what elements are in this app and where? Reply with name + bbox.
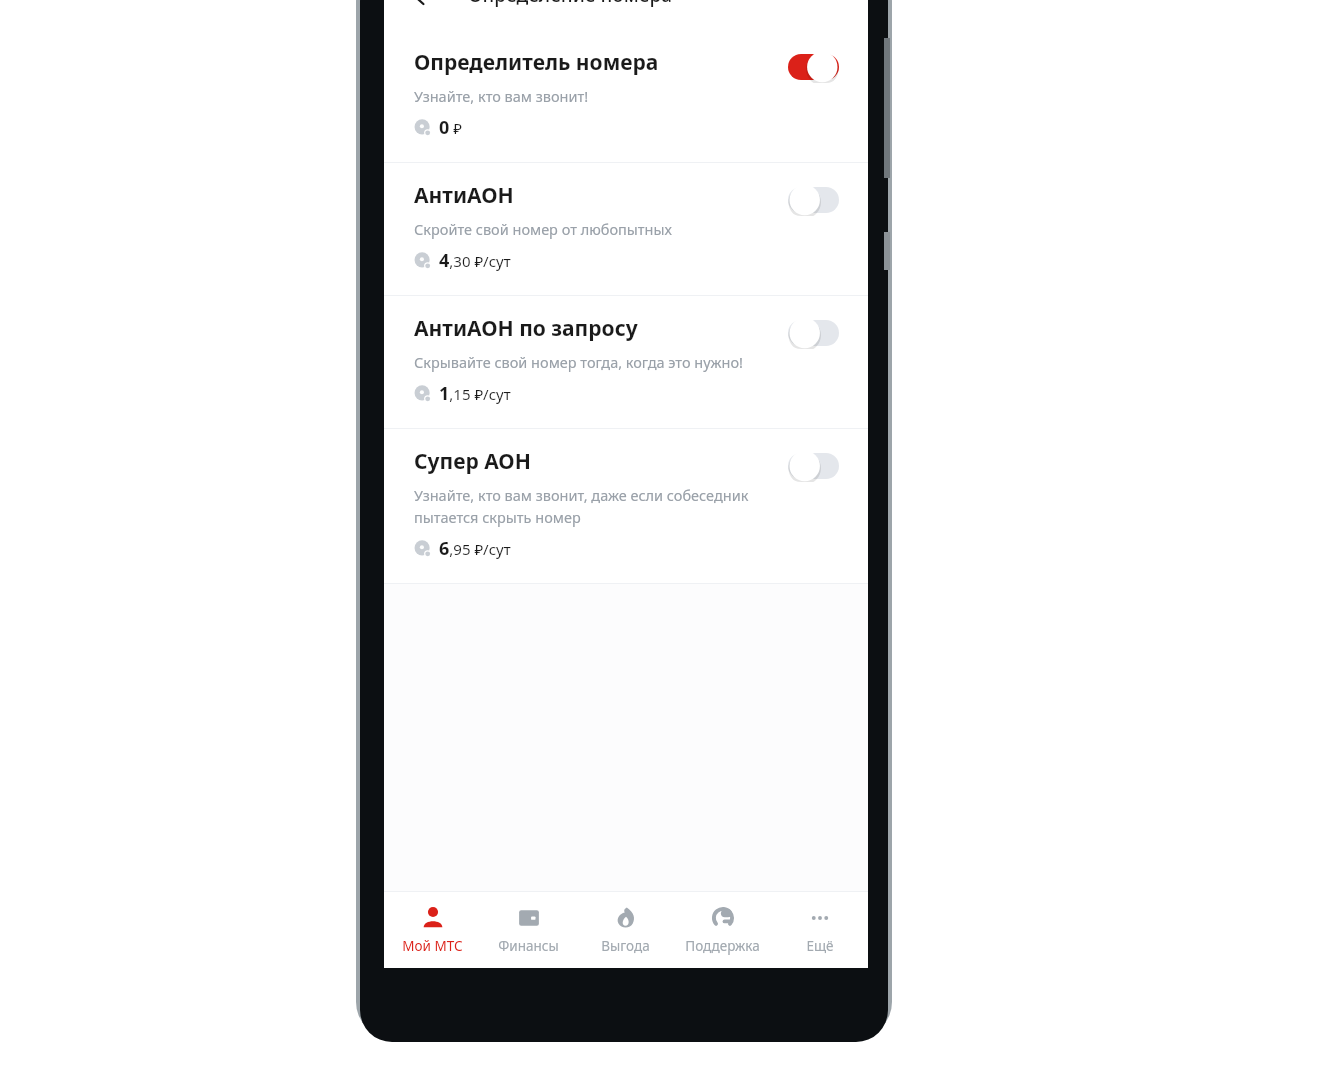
staticText: Узнайте, кто вам звонит! [414, 86, 589, 106]
staticText: Скройте свой номер от любопытных [414, 219, 672, 239]
staticText: Мой МТС [402, 937, 463, 955]
staticText: Финансы [498, 937, 559, 955]
button[interactable]: Назад [402, 0, 450, 12]
staticText: 1,15 ₽/сут [439, 381, 511, 406]
button[interactable]: Выгода [577, 892, 674, 968]
button[interactable]: Поддержка [674, 892, 771, 968]
staticText: Узнайте, кто вам звонит, даже если собес… [414, 485, 775, 527]
button[interactable]: Ещё [771, 892, 868, 968]
staticText: Выгода [601, 937, 650, 955]
button[interactable]: Финансы [480, 892, 577, 968]
button[interactable]: Переключатель: АнтиАОН [785, 184, 842, 216]
button[interactable]: Переключатель: АнтиАОН по запросу [785, 317, 842, 349]
staticText: Поддержка [685, 937, 760, 955]
staticText: 6,95 ₽/сут [439, 536, 511, 561]
button[interactable]: Переключатель: Определитель номера [785, 51, 842, 83]
button[interactable]: Переключатель: Супер АОН [785, 450, 842, 482]
button[interactable]: АнтиАОН [384, 163, 868, 295]
staticText: Ещё [806, 937, 834, 955]
button[interactable]: Мой МТС [384, 892, 480, 968]
staticText: Супер АОН [414, 447, 531, 476]
staticText: Скрывайте свой номер тогда, когда это ну… [414, 352, 743, 372]
staticText: Определитель номера [414, 48, 659, 77]
staticText: 0 ₽ [439, 115, 462, 140]
button[interactable]: АнтиАОН по запросу [384, 296, 868, 428]
button[interactable]: Супер АОН [384, 429, 868, 583]
staticText: 4,30 ₽/сут [439, 248, 511, 273]
staticText: АнтиАОН по запросу [414, 314, 638, 343]
staticText: АнтиАОН [414, 181, 514, 210]
button[interactable]: Определитель номера [384, 30, 868, 162]
staticText: Определение номера [468, 0, 672, 8]
